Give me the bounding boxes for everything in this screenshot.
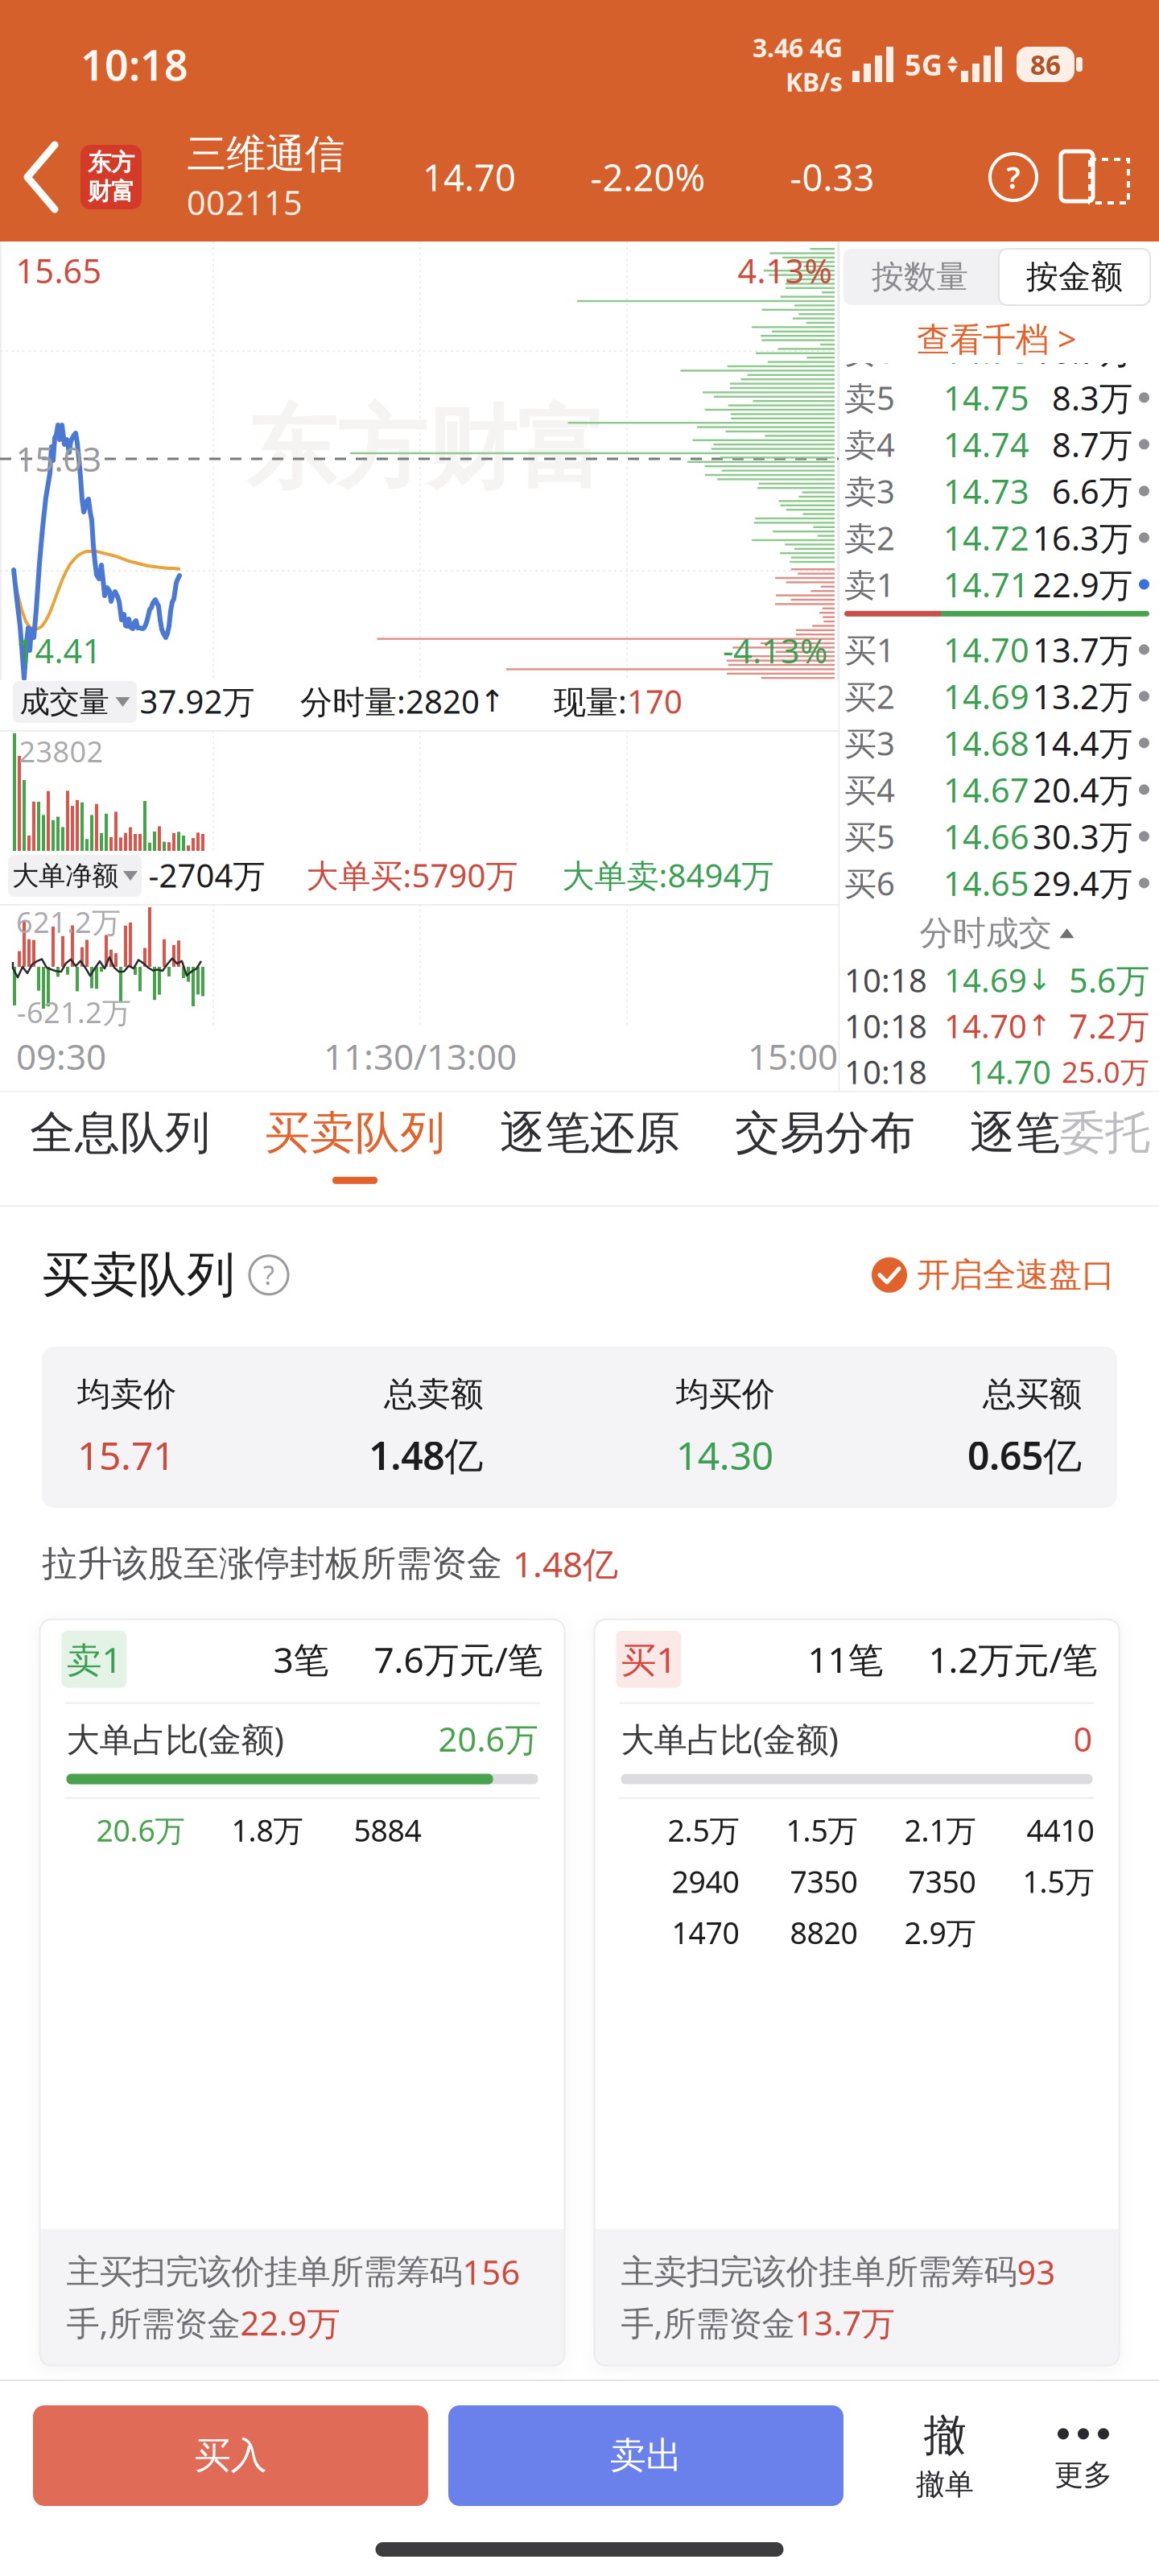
staticText: 撤 <box>924 2409 966 2462</box>
staticText: 14.65 <box>943 861 1029 905</box>
staticText: 现量: <box>554 680 627 722</box>
staticText: 5884 <box>354 1810 421 1850</box>
staticText: 14.66 <box>943 814 1029 858</box>
staticText: 东方 <box>88 148 134 177</box>
staticText: 20.4万 <box>1033 767 1132 812</box>
button[interactable]: 说明 <box>235 1256 288 1294</box>
staticText: 170 <box>627 680 683 722</box>
staticText: 29.4万 <box>1033 861 1132 905</box>
staticText: 卖出 <box>610 2433 682 2478</box>
staticText: -4.13% <box>723 628 827 673</box>
staticText: 14.69 <box>944 958 1027 1001</box>
staticText: 0.65亿 <box>967 1429 1082 1481</box>
staticText: 卖1 <box>66 1636 122 1683</box>
staticText: 14.4万 <box>1033 721 1132 765</box>
button[interactable]: 撤 <box>843 2409 974 2502</box>
staticText: 0 <box>1073 1717 1093 1761</box>
button[interactable]: 按数量 <box>843 249 996 305</box>
button[interactable]: 买1 <box>594 1619 1119 2366</box>
button[interactable]: Landscape <box>1037 147 1159 207</box>
button[interactable]: Back <box>0 143 60 211</box>
staticText: 22.9万 <box>240 2300 340 2345</box>
staticText: 86 <box>1030 47 1061 82</box>
staticText: 大单占比(金额) <box>621 1717 838 1761</box>
button[interactable]: 交易分布 <box>735 1105 915 1161</box>
button[interactable]: 开启全速盘口 <box>872 1255 1115 1295</box>
button[interactable]: 卖1 <box>40 1619 565 2366</box>
staticText: 分时量:2820 <box>300 680 480 722</box>
staticText: 8820 <box>790 1912 858 1952</box>
staticText: 大单卖:8494万 <box>562 854 774 896</box>
button[interactable]: 按金额 <box>999 249 1150 305</box>
staticText: 卖5 <box>844 376 895 419</box>
staticText: 7.6万元/笔 <box>374 1636 543 1683</box>
staticText: 13.7万 <box>1033 627 1132 672</box>
staticText: 14.75 <box>943 375 1029 420</box>
staticText: 14.72 <box>943 516 1029 560</box>
staticText: 总卖额 <box>384 1374 483 1415</box>
staticText: 20.6万 <box>438 1717 538 1761</box>
staticText: 14.70 <box>943 627 1029 672</box>
staticText: 成交量 <box>20 684 109 720</box>
staticText: 买2 <box>844 675 895 718</box>
button[interactable]: 卖出 <box>448 2405 843 2506</box>
staticText: 查看千档 > <box>917 316 1077 361</box>
staticText: -0.33 <box>790 153 874 201</box>
staticText: ↑ <box>1027 1009 1051 1042</box>
staticText: 5G <box>905 45 942 84</box>
staticText: 主卖扫完该价挂单所需筹码 <box>621 2252 1017 2292</box>
button[interactable]: 逐笔 <box>970 1105 1150 1161</box>
staticText: 14.71 <box>943 562 1029 606</box>
staticText: 2940 <box>672 1861 739 1901</box>
staticText: 买入 <box>194 2433 267 2478</box>
staticText: 撤单 <box>916 2467 974 2502</box>
button[interactable]: 全息队列 <box>30 1105 210 1161</box>
button[interactable]: 逐笔还原 <box>500 1105 680 1161</box>
staticText: ↓ <box>1027 963 1051 996</box>
button[interactable]: 大单净额 <box>8 855 142 897</box>
staticText: 财富 <box>88 177 134 206</box>
staticText: 11:30/13:00 <box>324 1033 517 1080</box>
staticText: ↑ <box>480 684 505 718</box>
staticText: 23802 <box>19 732 103 770</box>
staticText: 10:18 <box>844 1004 927 1047</box>
button[interactable]: 买卖队列 <box>265 1105 445 1184</box>
staticText: 002115 <box>187 180 303 224</box>
staticText: 14.70 <box>968 1050 1051 1093</box>
staticText: 卖6 <box>844 329 895 372</box>
staticText: 1.2万元/笔 <box>928 1636 1097 1683</box>
staticText: ? <box>263 1258 274 1292</box>
staticText: 14.69 <box>943 674 1029 718</box>
staticText: 3笔 <box>273 1636 329 1683</box>
staticText: 2.1万 <box>904 1810 976 1850</box>
staticText: 1.48亿 <box>513 1540 618 1587</box>
staticText: 22.9万 <box>1033 562 1132 606</box>
button[interactable]: 成交量 <box>13 681 137 723</box>
staticText: 2.9万 <box>904 1912 976 1952</box>
staticText: 开启全速盘口 <box>917 1255 1115 1295</box>
button[interactable]: 查看千档 > <box>917 305 1077 361</box>
staticText: ? <box>1006 157 1020 197</box>
button[interactable]: Help <box>949 154 1037 200</box>
staticText: 15.65 <box>16 248 102 293</box>
staticText: 东方财富 <box>246 394 607 505</box>
staticText: 大单买:5790万 <box>306 854 518 896</box>
staticText: 10:18 <box>844 958 927 1001</box>
staticText: 7350 <box>908 1861 976 1901</box>
staticText: 手,所需资金 <box>621 2300 795 2345</box>
button[interactable]: 更多 <box>974 2419 1112 2493</box>
staticText: 买3 <box>844 722 895 764</box>
staticText: 按数量 <box>872 257 968 297</box>
staticText: 3.46 4G <box>753 30 843 64</box>
staticText: 8.7万 <box>1052 422 1132 466</box>
staticText: 总买额 <box>983 1374 1082 1415</box>
staticText: 20.6万 <box>96 1810 185 1850</box>
staticText: 10:18 <box>844 1050 927 1093</box>
staticText: 37.92万 <box>140 680 255 722</box>
staticText: 1.5万 <box>786 1810 858 1850</box>
staticText: 09:30 <box>16 1033 106 1080</box>
staticText: 14.70 <box>423 153 516 201</box>
staticText: 1.5万 <box>1023 1861 1094 1901</box>
button[interactable]: 分时成交 <box>920 906 1074 954</box>
button[interactable]: 买入 <box>33 2405 428 2506</box>
